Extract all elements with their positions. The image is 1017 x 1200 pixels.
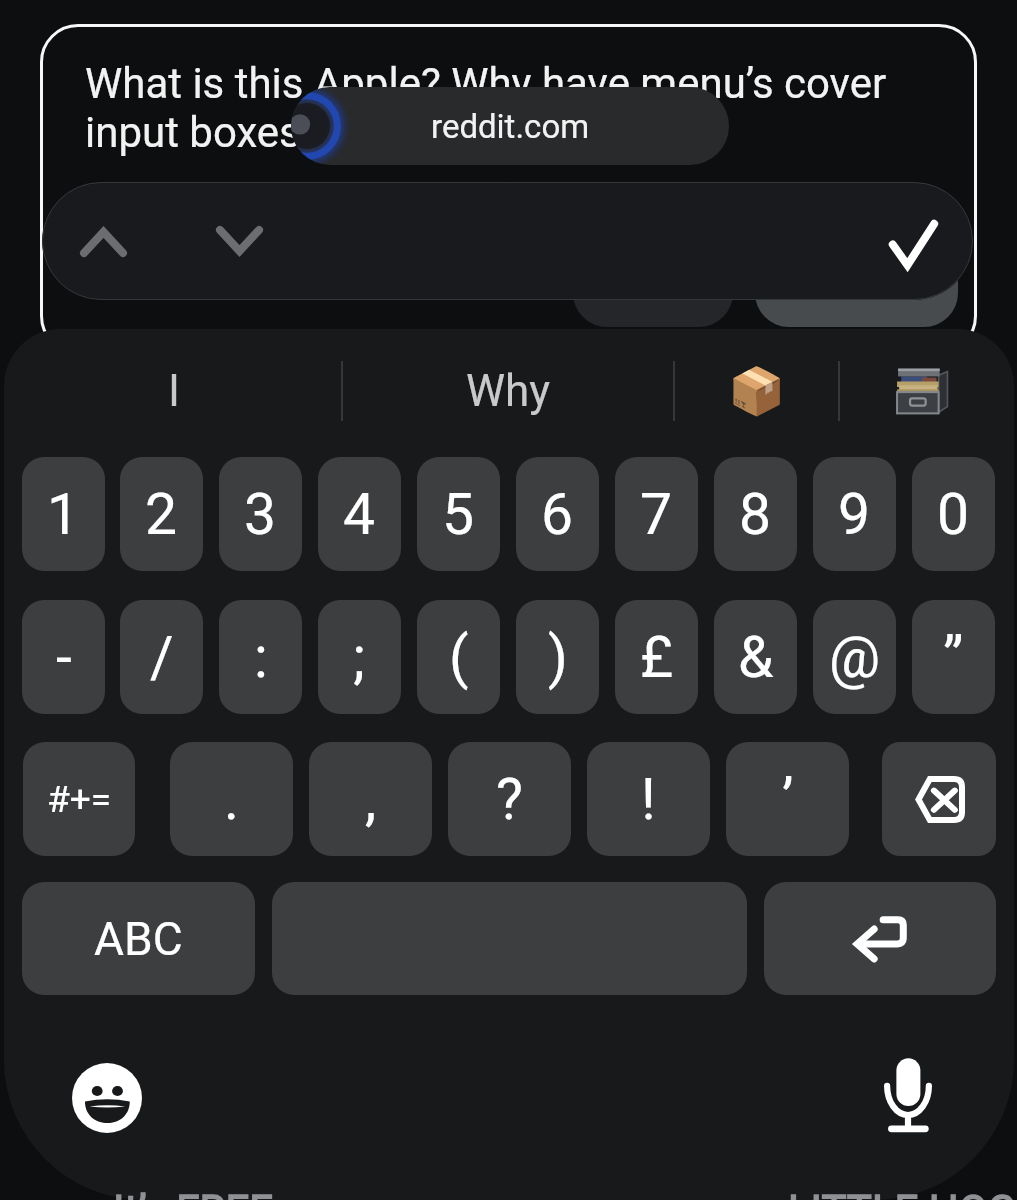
button[interactable]: Voice input — [861, 1048, 955, 1142]
button[interactable]: . — [170, 742, 293, 856]
button[interactable]: 0 — [912, 457, 995, 571]
button[interactable]: Done — [869, 200, 957, 288]
staticText: What is this Apple? Why have menu’s cove… — [85, 59, 887, 108]
button[interactable]: Backspace — [882, 742, 996, 856]
button[interactable]: ABC — [22, 882, 255, 995]
button[interactable]: 3 — [219, 457, 302, 571]
staticText: 6 — [541, 481, 574, 548]
staticText: / — [150, 624, 174, 691]
staticText: ? — [496, 766, 523, 833]
button[interactable]: : — [219, 600, 302, 714]
staticText: I — [168, 365, 180, 417]
button[interactable]: reddit.com — [291, 87, 729, 165]
staticText: £ — [640, 624, 674, 691]
staticText: 0 — [937, 481, 970, 548]
staticText: ” — [943, 624, 964, 691]
button[interactable]: 5 — [417, 457, 500, 571]
button[interactable]: 8 — [714, 457, 797, 571]
button[interactable]: 7 — [615, 457, 698, 571]
button[interactable]: #+= — [23, 742, 135, 856]
staticText: : — [254, 624, 268, 691]
button[interactable]: ? — [448, 742, 571, 856]
button[interactable]: @ — [813, 600, 896, 714]
staticText: 3 — [244, 481, 277, 548]
staticText: 4 — [343, 481, 376, 548]
button[interactable]: £ — [615, 600, 698, 714]
staticText: 9 — [838, 481, 871, 548]
button[interactable]: I — [6, 341, 341, 441]
staticText: 📦 — [728, 364, 786, 418]
staticText: ! — [641, 766, 656, 833]
staticText: 7 — [640, 481, 673, 548]
staticText: input boxes — [85, 108, 301, 157]
button[interactable]: / — [120, 600, 203, 714]
staticText: ( — [449, 624, 469, 691]
staticText: & — [738, 624, 774, 691]
button[interactable]: Space — [272, 882, 747, 995]
staticText: #+= — [47, 778, 112, 821]
staticText: ABC — [94, 912, 183, 966]
button[interactable]: Why — [343, 341, 673, 441]
button[interactable]: Scroll up — [59, 198, 147, 286]
staticText: 1 — [47, 481, 80, 548]
staticText: ; — [353, 624, 366, 691]
button[interactable]: ) — [516, 600, 599, 714]
staticText: It’s FREE — [113, 1186, 274, 1200]
staticText: 5 — [442, 481, 475, 548]
button[interactable]: & — [714, 600, 797, 714]
button[interactable]: Emoji — [60, 1051, 154, 1145]
button[interactable]: , — [309, 742, 432, 856]
button[interactable]: ” — [912, 600, 995, 714]
staticText: reddit.com — [431, 107, 590, 146]
button[interactable]: Package emoji suggestion — [675, 341, 838, 441]
staticText: ’ — [782, 766, 794, 833]
staticText: LITTLE HOG — [788, 1186, 1017, 1200]
button[interactable]: 1 — [22, 457, 105, 571]
button[interactable]: Scroll down — [195, 196, 283, 284]
button[interactable]: ’ — [726, 742, 849, 856]
button[interactable]: 6 — [516, 457, 599, 571]
button[interactable]: Card index emoji suggestion — [836, 341, 1008, 441]
staticText: , — [365, 766, 377, 833]
button[interactable]: 4 — [318, 457, 401, 571]
staticText: @ — [829, 624, 881, 691]
staticText: 2 — [145, 481, 178, 548]
button[interactable]: ; — [318, 600, 401, 714]
button[interactable]: ! — [587, 742, 710, 856]
button[interactable]: 2 — [120, 457, 203, 571]
button[interactable]: 9 — [813, 457, 896, 571]
staticText: ) — [548, 624, 568, 691]
button[interactable]: Return — [764, 882, 996, 995]
staticText: 8 — [739, 481, 772, 548]
staticText: . — [224, 766, 240, 833]
button[interactable]: ( — [417, 600, 500, 714]
staticText: - — [56, 624, 72, 691]
button[interactable]: - — [22, 600, 105, 714]
staticText: Why — [466, 365, 551, 417]
